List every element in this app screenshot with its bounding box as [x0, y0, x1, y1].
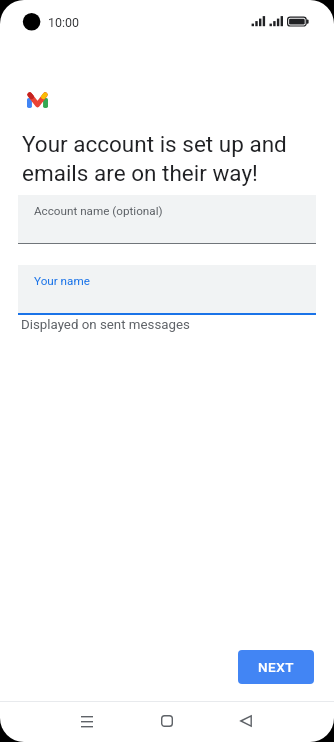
button[interactable]: Account name (optional): [18, 195, 316, 243]
button[interactable]: Your name: [18, 265, 316, 313]
staticText: NEXT: [258, 659, 294, 675]
staticText: Your account is set up and emails are on…: [22, 131, 287, 187]
staticText: 10:00: [48, 15, 80, 30]
staticText: Displayed on sent messages: [21, 317, 190, 333]
button[interactable]: Home: [147, 701, 187, 741]
staticText: Your name: [34, 274, 90, 288]
button[interactable]: Recents: [67, 701, 107, 741]
button[interactable]: Back: [226, 701, 266, 741]
staticText: Account name (optional): [34, 204, 163, 218]
button[interactable]: NEXT: [238, 650, 314, 684]
